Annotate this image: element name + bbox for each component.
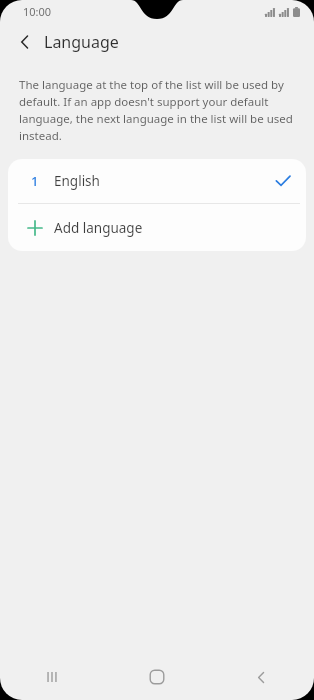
staticText: English: [54, 172, 100, 190]
button[interactable]: Recents: [0, 654, 104, 700]
staticText: 10:00: [23, 4, 52, 19]
button[interactable]: Add language: [8, 204, 306, 251]
button[interactable]: 1: [8, 159, 306, 203]
button[interactable]: Back: [209, 654, 314, 700]
staticText: The language at the top of the list will…: [19, 77, 297, 144]
staticText: Add language: [54, 219, 143, 237]
staticText: Language: [44, 31, 119, 53]
staticText: 1: [31, 172, 39, 190]
button[interactable]: Back: [8, 25, 42, 59]
button[interactable]: Home: [104, 654, 209, 700]
